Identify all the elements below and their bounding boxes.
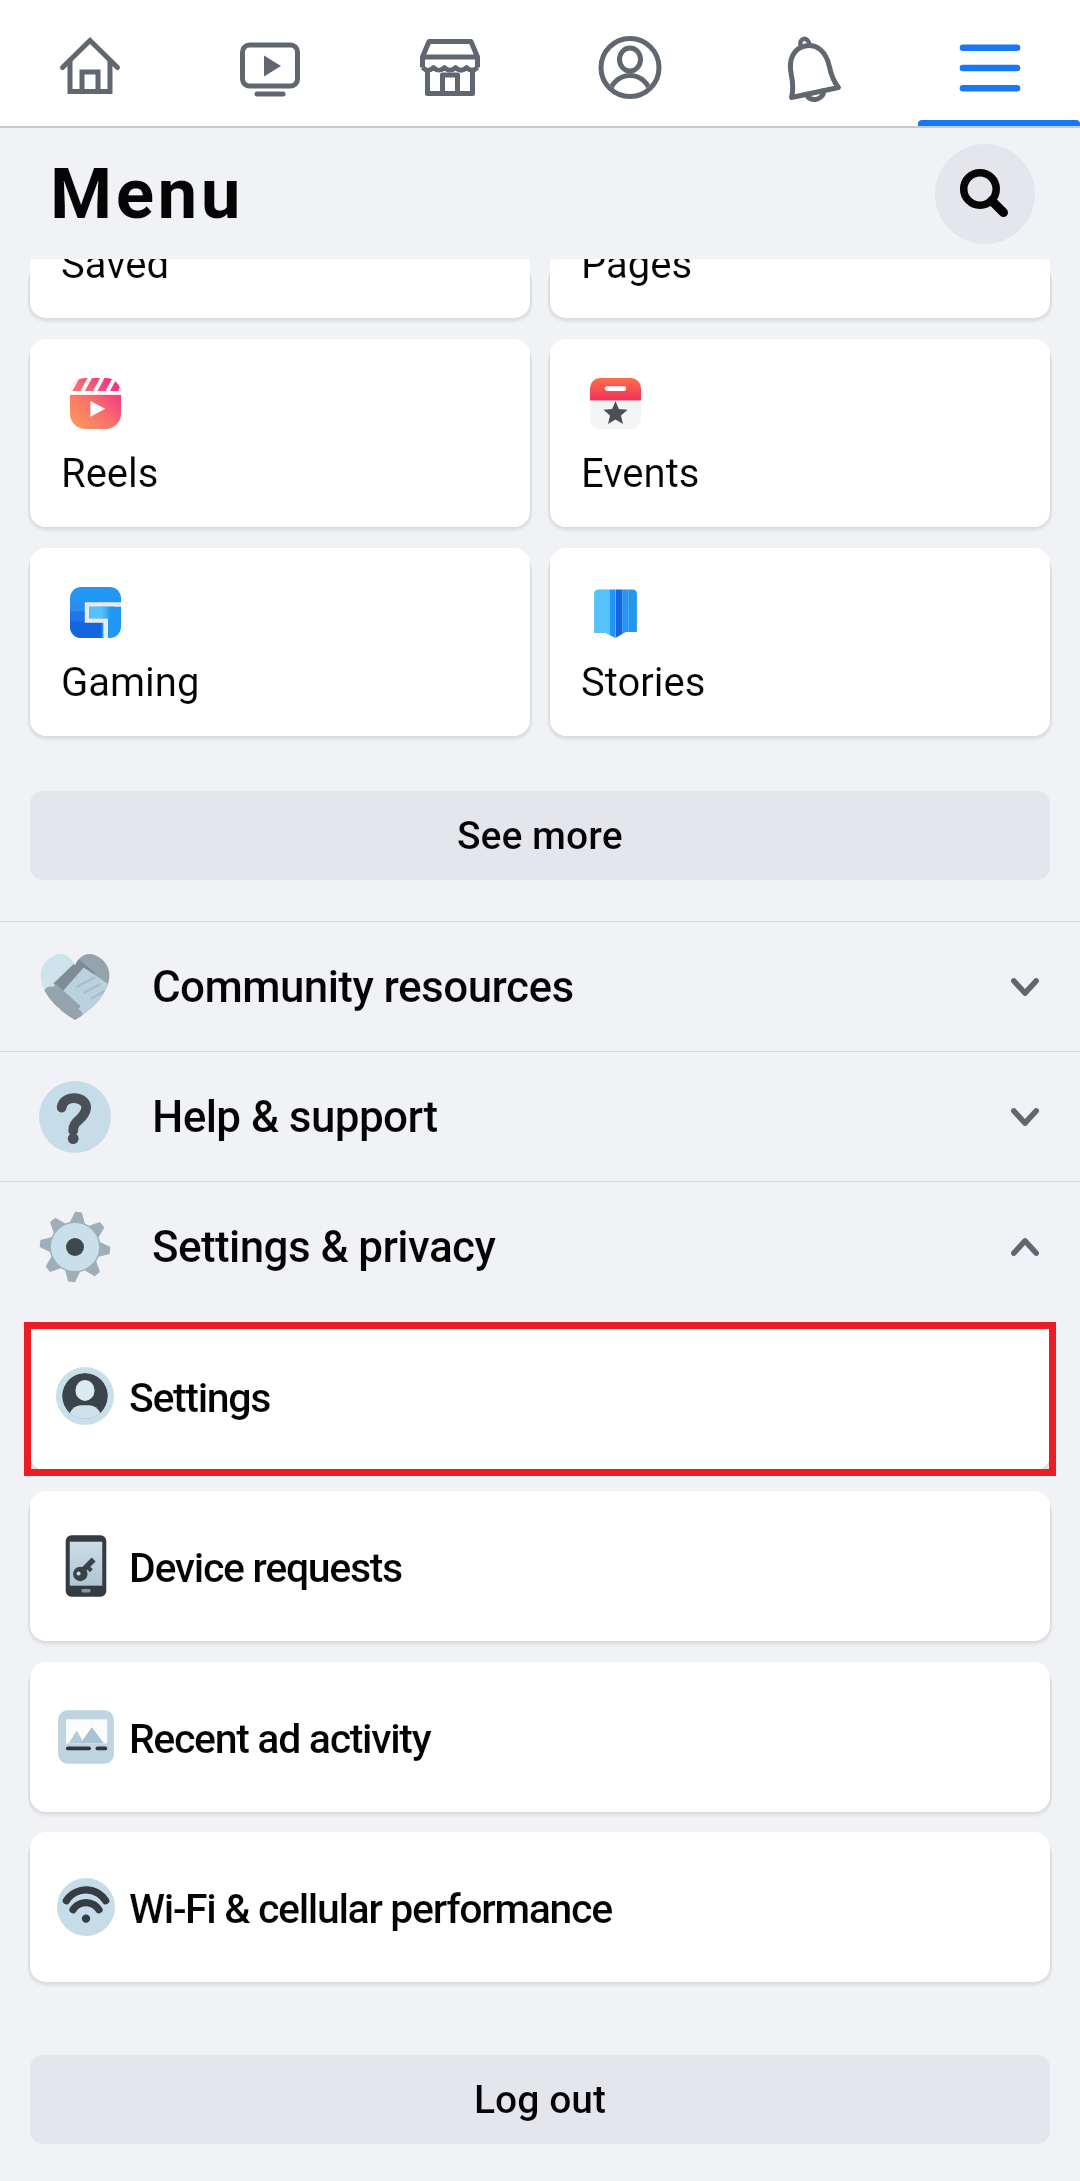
staticText: Settings (129, 1374, 270, 1422)
staticText: Community resources (152, 961, 574, 1013)
staticText: Recent ad activity (129, 1715, 431, 1763)
button[interactable]: See more (30, 791, 1050, 880)
staticText: Pages (581, 259, 693, 288)
staticText: Menu (50, 152, 245, 235)
button[interactable]: Profile (540, 0, 720, 128)
button[interactable]: Settings & privacy (0, 1182, 1080, 1312)
button[interactable]: Menu (900, 0, 1080, 128)
button[interactable]: Video (180, 0, 360, 128)
staticText: Settings & privacy (152, 1221, 496, 1273)
button[interactable]: Device requests (30, 1491, 1050, 1641)
button[interactable]: Stories (550, 548, 1050, 736)
staticText: Device requests (129, 1544, 402, 1592)
button[interactable]: Help & support (0, 1052, 1080, 1182)
staticText: Events (581, 450, 700, 497)
button[interactable]: Log out (30, 2055, 1050, 2144)
staticText: See more (457, 813, 623, 859)
button[interactable]: Recent ad activity (30, 1662, 1050, 1812)
button[interactable]: Search (935, 144, 1035, 244)
button[interactable]: Marketplace (360, 0, 540, 128)
button[interactable]: Settings (30, 1321, 1050, 1471)
staticText: Help & support (152, 1091, 438, 1143)
staticText: Wi-Fi & cellular performance (129, 1885, 612, 1933)
button[interactable]: Events (550, 339, 1050, 527)
staticText: Gaming (61, 659, 200, 706)
button[interactable]: Community resources (0, 922, 1080, 1052)
button[interactable]: Home (0, 0, 180, 128)
staticText: Stories (581, 659, 706, 706)
button[interactable]: Notifications (720, 0, 900, 128)
button[interactable]: Gaming (30, 548, 530, 736)
staticText: Reels (61, 450, 159, 497)
button[interactable]: Pages (550, 259, 1050, 318)
button[interactable]: Reels (30, 339, 530, 527)
button[interactable]: Wi-Fi & cellular performance (30, 1832, 1050, 1982)
button[interactable]: Saved (30, 259, 530, 318)
staticText: Saved (61, 259, 170, 288)
staticText: Log out (474, 2077, 607, 2123)
